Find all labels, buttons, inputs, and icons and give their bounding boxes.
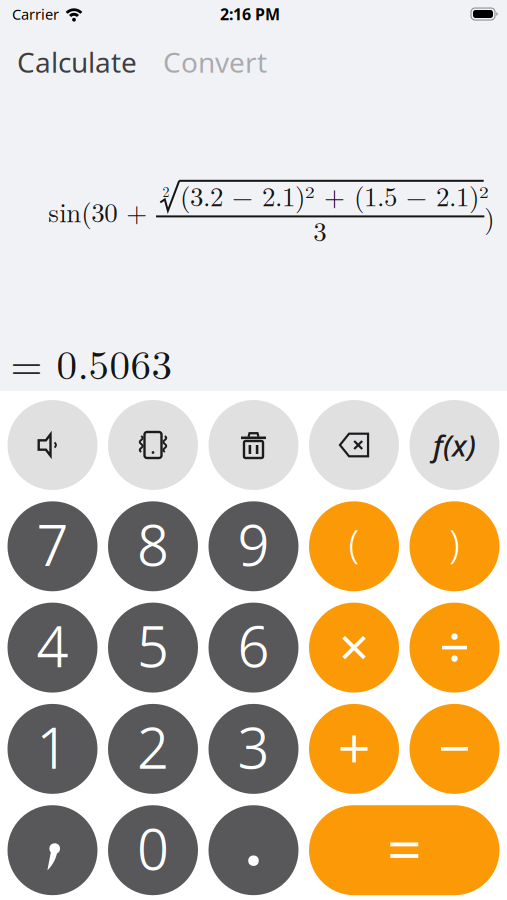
button[interactable] (7, 805, 97, 895)
button[interactable]: 5 (108, 603, 198, 693)
staticText: = 0.5063 (10, 333, 172, 391)
button[interactable] (7, 400, 97, 490)
button[interactable]: 8 (108, 501, 198, 591)
button[interactable]: 1 (7, 704, 97, 794)
staticText: 6 (237, 607, 269, 684)
staticText: 1 (36, 709, 68, 785)
staticText: ) (484, 198, 494, 236)
button[interactable]: 7 (7, 501, 97, 591)
button[interactable]: ) (409, 501, 499, 591)
staticText: 3 (237, 709, 269, 785)
button[interactable]: 3 (208, 704, 298, 794)
staticText: sin(30 + (48, 192, 147, 230)
button[interactable] (108, 400, 198, 490)
button[interactable] (409, 603, 499, 693)
button[interactable] (208, 400, 298, 490)
staticText: 5 (137, 607, 169, 684)
button[interactable]: 2 (108, 704, 198, 794)
staticText: ) (449, 518, 460, 569)
button[interactable]: f(x) (409, 400, 499, 490)
staticText: (3.2 − 2.1)² + (1.5 − 2.1)² (180, 176, 489, 214)
button[interactable]: ( (309, 501, 399, 591)
staticText: 3 (313, 211, 326, 249)
button[interactable]: 9 (208, 501, 298, 591)
staticText: 9 (237, 506, 269, 582)
staticText: 8 (137, 506, 169, 582)
button[interactable] (309, 400, 399, 490)
staticText: 2 (137, 709, 169, 785)
button[interactable] (208, 805, 298, 895)
button[interactable]: Calculate (17, 43, 137, 81)
button[interactable] (309, 805, 499, 895)
staticText: Calculate (17, 43, 137, 81)
button[interactable] (309, 603, 399, 693)
button[interactable]: 0 (108, 805, 198, 895)
staticText: Convert (163, 43, 267, 81)
staticText: 4 (36, 607, 68, 684)
staticText: f(x) (433, 425, 476, 464)
staticText: 7 (36, 506, 68, 582)
button[interactable]: 4 (7, 603, 97, 693)
staticText: ( (348, 518, 359, 569)
staticText: 2 (162, 181, 169, 201)
button[interactable] (409, 704, 499, 794)
staticText: 2:16 PM (220, 3, 280, 25)
button[interactable]: Convert (163, 43, 267, 81)
button[interactable] (309, 704, 399, 794)
staticText: Carrier (12, 4, 59, 24)
button[interactable]: 6 (208, 603, 298, 693)
staticText: 0 (137, 810, 169, 886)
